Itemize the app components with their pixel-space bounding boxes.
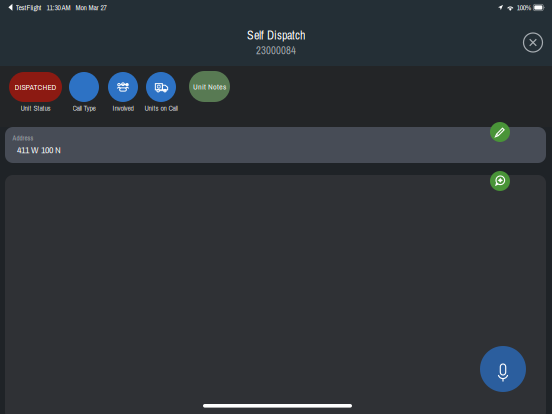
button[interactable]: Call Type bbox=[69, 72, 99, 116]
staticText: 100% bbox=[517, 2, 531, 13]
staticText: Mon Mar 27 bbox=[75, 2, 106, 13]
staticText: Units on Call bbox=[144, 103, 177, 113]
button[interactable]: Close bbox=[516, 25, 550, 59]
staticText: Call Type bbox=[72, 103, 95, 113]
button[interactable]: Address bbox=[5, 127, 546, 163]
button[interactable]: Involved bbox=[108, 72, 138, 116]
button[interactable]: Voice input bbox=[480, 346, 526, 392]
button[interactable]: Edit address bbox=[490, 122, 510, 142]
button[interactable]: DISPATCHED bbox=[9, 72, 62, 116]
staticText: Unit Notes bbox=[193, 81, 226, 92]
staticText: Involved bbox=[112, 103, 133, 113]
staticText: 411 W 100 N bbox=[17, 143, 61, 156]
staticText: Self Dispatch bbox=[247, 27, 305, 43]
staticText: TestFlight bbox=[15, 2, 41, 13]
button[interactable]: Add comment bbox=[490, 171, 510, 191]
button[interactable]: Unit Notes bbox=[189, 71, 230, 102]
staticText: 11:30 AM bbox=[46, 2, 70, 13]
staticText: DISPATCHED bbox=[14, 82, 56, 92]
staticText: 23000084 bbox=[256, 43, 296, 58]
staticText: Address bbox=[12, 134, 33, 143]
staticText: Unit Status bbox=[20, 103, 50, 113]
button[interactable]: Units on Call bbox=[146, 72, 176, 116]
